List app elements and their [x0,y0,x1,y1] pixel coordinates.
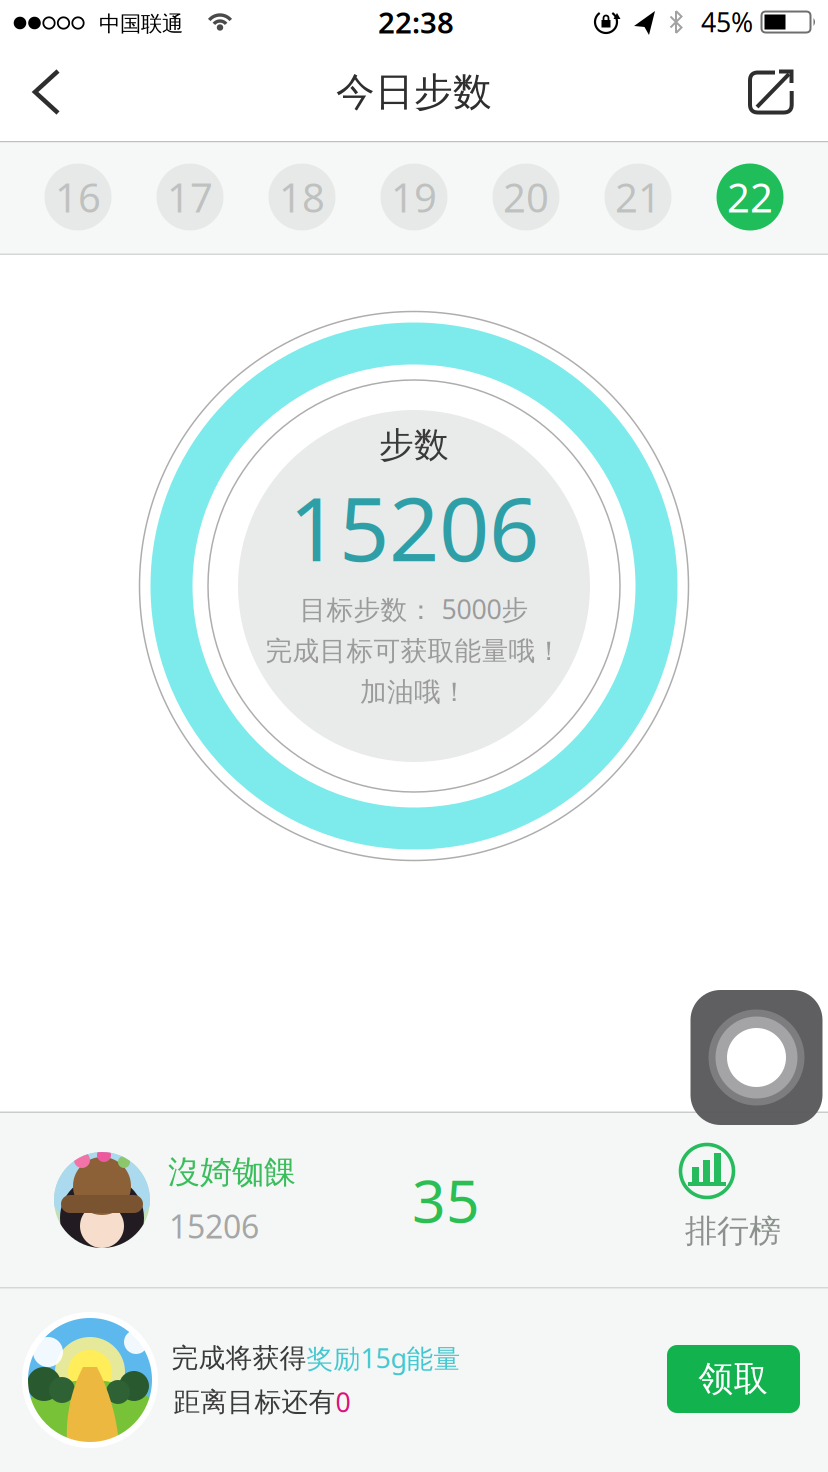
button[interactable]: 22 [705,152,795,242]
staticText: 15206 [169,1205,259,1247]
button[interactable]: 18 [257,152,347,242]
staticText: 排行榜 [685,1211,781,1251]
staticText: 沒婍铷餜 [168,1152,296,1192]
button[interactable] [724,40,814,142]
staticText: 0 [335,1384,350,1420]
button[interactable]: 排行榜 [658,1135,808,1262]
staticText: 步数 [379,424,449,466]
staticText: 18 [279,170,325,223]
button[interactable]: 16 [33,152,123,242]
staticText: 45% [701,4,753,40]
staticText: 领取 [698,1358,768,1400]
staticText: 今日步数 [336,68,492,116]
staticText: 完成将获得 [171,1342,306,1374]
staticText: 奖励15g能量 [306,1340,460,1376]
staticText: 22:38 [378,2,454,41]
button[interactable]: 领取 [667,1345,800,1413]
button[interactable]: 21 [593,152,683,242]
staticText: 加油哦！ [360,676,468,708]
button[interactable] [0,40,80,142]
staticText: 完成目标可获取能量哦！ [265,635,562,667]
staticText: 35 [412,1161,480,1239]
staticText: 20 [503,170,549,223]
button[interactable]: 17 [145,152,235,242]
staticText: 21 [615,170,661,223]
staticText: 16 [55,170,101,223]
button[interactable]: 20 [481,152,571,242]
staticText: 距离目标还有 [173,1386,335,1418]
staticText: 19 [391,170,437,223]
staticText: 22 [727,170,773,223]
staticText: 15206 [289,469,539,585]
staticText: 中国联通 [99,11,183,37]
button[interactable] [690,990,822,1125]
button[interactable]: 19 [369,152,459,242]
staticText: 17 [167,170,213,223]
staticText: 目标步数： 5000步 [299,591,528,627]
